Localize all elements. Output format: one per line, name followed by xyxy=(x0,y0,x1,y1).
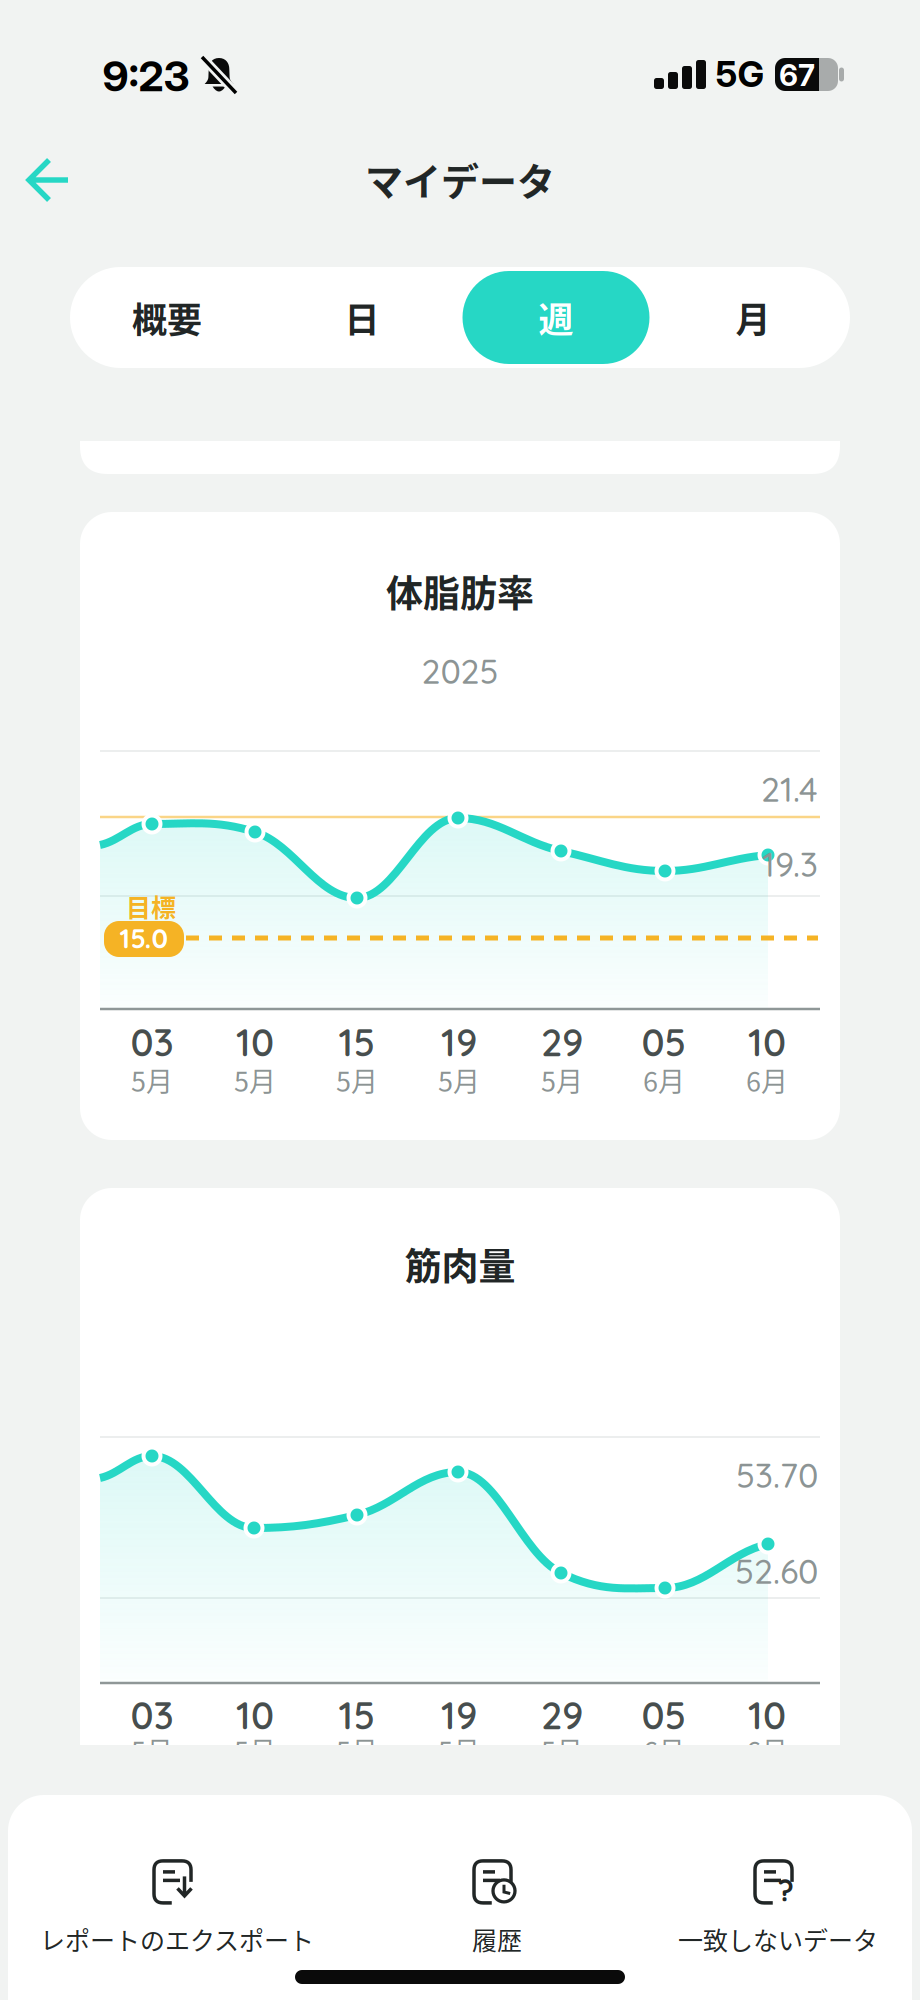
staticText: 5月 xyxy=(336,1060,378,1100)
staticText: 履歴 xyxy=(472,1921,522,1957)
button[interactable]: ? xyxy=(678,1861,878,1957)
staticText: 5月 xyxy=(234,1060,276,1100)
staticText: 5月 xyxy=(438,1730,480,1770)
staticText: 19.3 xyxy=(762,843,818,885)
button[interactable]: 概要 xyxy=(69,267,264,368)
staticText: 05 xyxy=(641,1691,686,1739)
staticText: 10 xyxy=(748,1018,786,1066)
staticText: 筋肉量 xyxy=(404,1237,515,1291)
button[interactable]: レポートのエクスポート xyxy=(40,1861,314,1957)
staticText: 19 xyxy=(441,1691,477,1739)
staticText: 目標 xyxy=(126,888,176,924)
staticText: マイデータ xyxy=(365,151,555,206)
staticText: 53.70 xyxy=(736,1454,818,1496)
staticText: 概要 xyxy=(132,292,202,343)
staticText: 5G xyxy=(715,52,764,96)
staticText: 05 xyxy=(641,1018,686,1066)
staticText: 6月 xyxy=(643,1730,685,1770)
staticText: 15 xyxy=(338,1691,375,1739)
staticText: 5月 xyxy=(131,1060,173,1100)
staticText: 5月 xyxy=(541,1730,583,1770)
staticText: 19 xyxy=(441,1018,477,1066)
staticText: 5月 xyxy=(541,1060,583,1100)
staticText: 5月 xyxy=(131,1730,173,1770)
button[interactable]: Back xyxy=(28,160,68,200)
button[interactable]: 履歴 xyxy=(472,1861,522,1957)
staticText: 10 xyxy=(236,1691,274,1739)
staticText: 日 xyxy=(344,292,379,343)
staticText: レポートのエクスポート xyxy=(40,1921,314,1957)
staticText: 21.4 xyxy=(761,768,818,810)
staticText: 10 xyxy=(748,1691,786,1739)
staticText: 一致しないデータ xyxy=(678,1921,878,1957)
staticText: 2025 xyxy=(421,650,498,692)
staticText: 月 xyxy=(735,292,770,343)
staticText: 6月 xyxy=(746,1060,788,1100)
staticText: 52.60 xyxy=(735,1550,818,1592)
staticText: 5月 xyxy=(336,1730,378,1770)
staticText: 15.0 xyxy=(119,921,168,955)
staticText: 6月 xyxy=(643,1060,685,1100)
button[interactable]: 週 xyxy=(462,271,649,364)
staticText: 67 xyxy=(779,57,815,93)
button[interactable]: 月 xyxy=(655,267,850,368)
button[interactable]: 日 xyxy=(264,267,459,368)
staticText: 9:23 xyxy=(102,51,189,101)
staticText: 5月 xyxy=(234,1730,276,1770)
staticText: 6月 xyxy=(746,1730,788,1770)
staticText: 03 xyxy=(130,1018,173,1066)
staticText: 5月 xyxy=(438,1060,480,1100)
staticText: 15 xyxy=(338,1018,375,1066)
staticText: 03 xyxy=(130,1691,173,1739)
staticText: 体脂肪率 xyxy=(386,564,534,618)
staticText: 29 xyxy=(541,1018,583,1066)
staticText: 29 xyxy=(541,1691,583,1739)
staticText: ? xyxy=(778,1871,794,1909)
staticText: 週 xyxy=(538,292,573,343)
staticText: 10 xyxy=(236,1018,274,1066)
